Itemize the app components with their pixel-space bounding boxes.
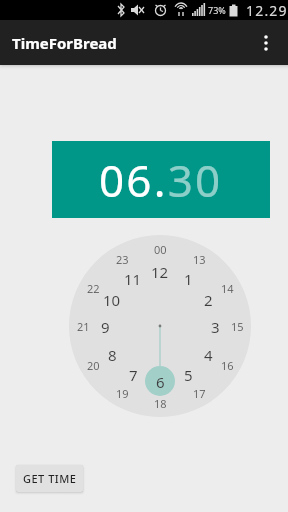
button[interactable]: GET TIME <box>16 465 83 492</box>
staticText: 11 <box>124 269 142 287</box>
staticText: 1 <box>184 269 193 287</box>
staticText: 4 <box>204 345 213 363</box>
staticText: TimeForBread <box>12 33 117 53</box>
button[interactable]: 12 <box>69 235 251 417</box>
staticText: 8 <box>108 345 117 363</box>
staticText: 5 <box>184 365 193 383</box>
button[interactable] <box>254 31 278 55</box>
staticText: 9 <box>101 317 110 335</box>
staticText: 16 <box>221 358 234 373</box>
staticText: 17 <box>193 386 206 401</box>
staticText: 06.30 <box>99 150 223 210</box>
button[interactable]: 06.30 <box>52 141 270 218</box>
staticText: 3 <box>211 317 220 335</box>
staticText: 13 <box>193 252 206 267</box>
staticText: 20 <box>87 358 100 373</box>
staticText: 00 <box>154 242 167 257</box>
staticText: 2 <box>204 290 213 308</box>
staticText: GET TIME <box>23 471 77 486</box>
staticText: 23 <box>116 252 129 267</box>
staticText: 12 <box>151 262 169 280</box>
staticText: 73% <box>208 4 226 16</box>
staticText: 14 <box>221 281 234 296</box>
staticText: 19 <box>116 386 129 401</box>
staticText: 6 <box>156 372 165 390</box>
staticText: 15 <box>231 319 244 334</box>
staticText: 18 <box>154 396 167 411</box>
staticText: 10 <box>103 290 121 308</box>
staticText: 12.29 <box>246 1 288 20</box>
staticText: 22 <box>87 281 100 296</box>
staticText: 21 <box>77 319 90 334</box>
staticText: 7 <box>129 365 138 383</box>
